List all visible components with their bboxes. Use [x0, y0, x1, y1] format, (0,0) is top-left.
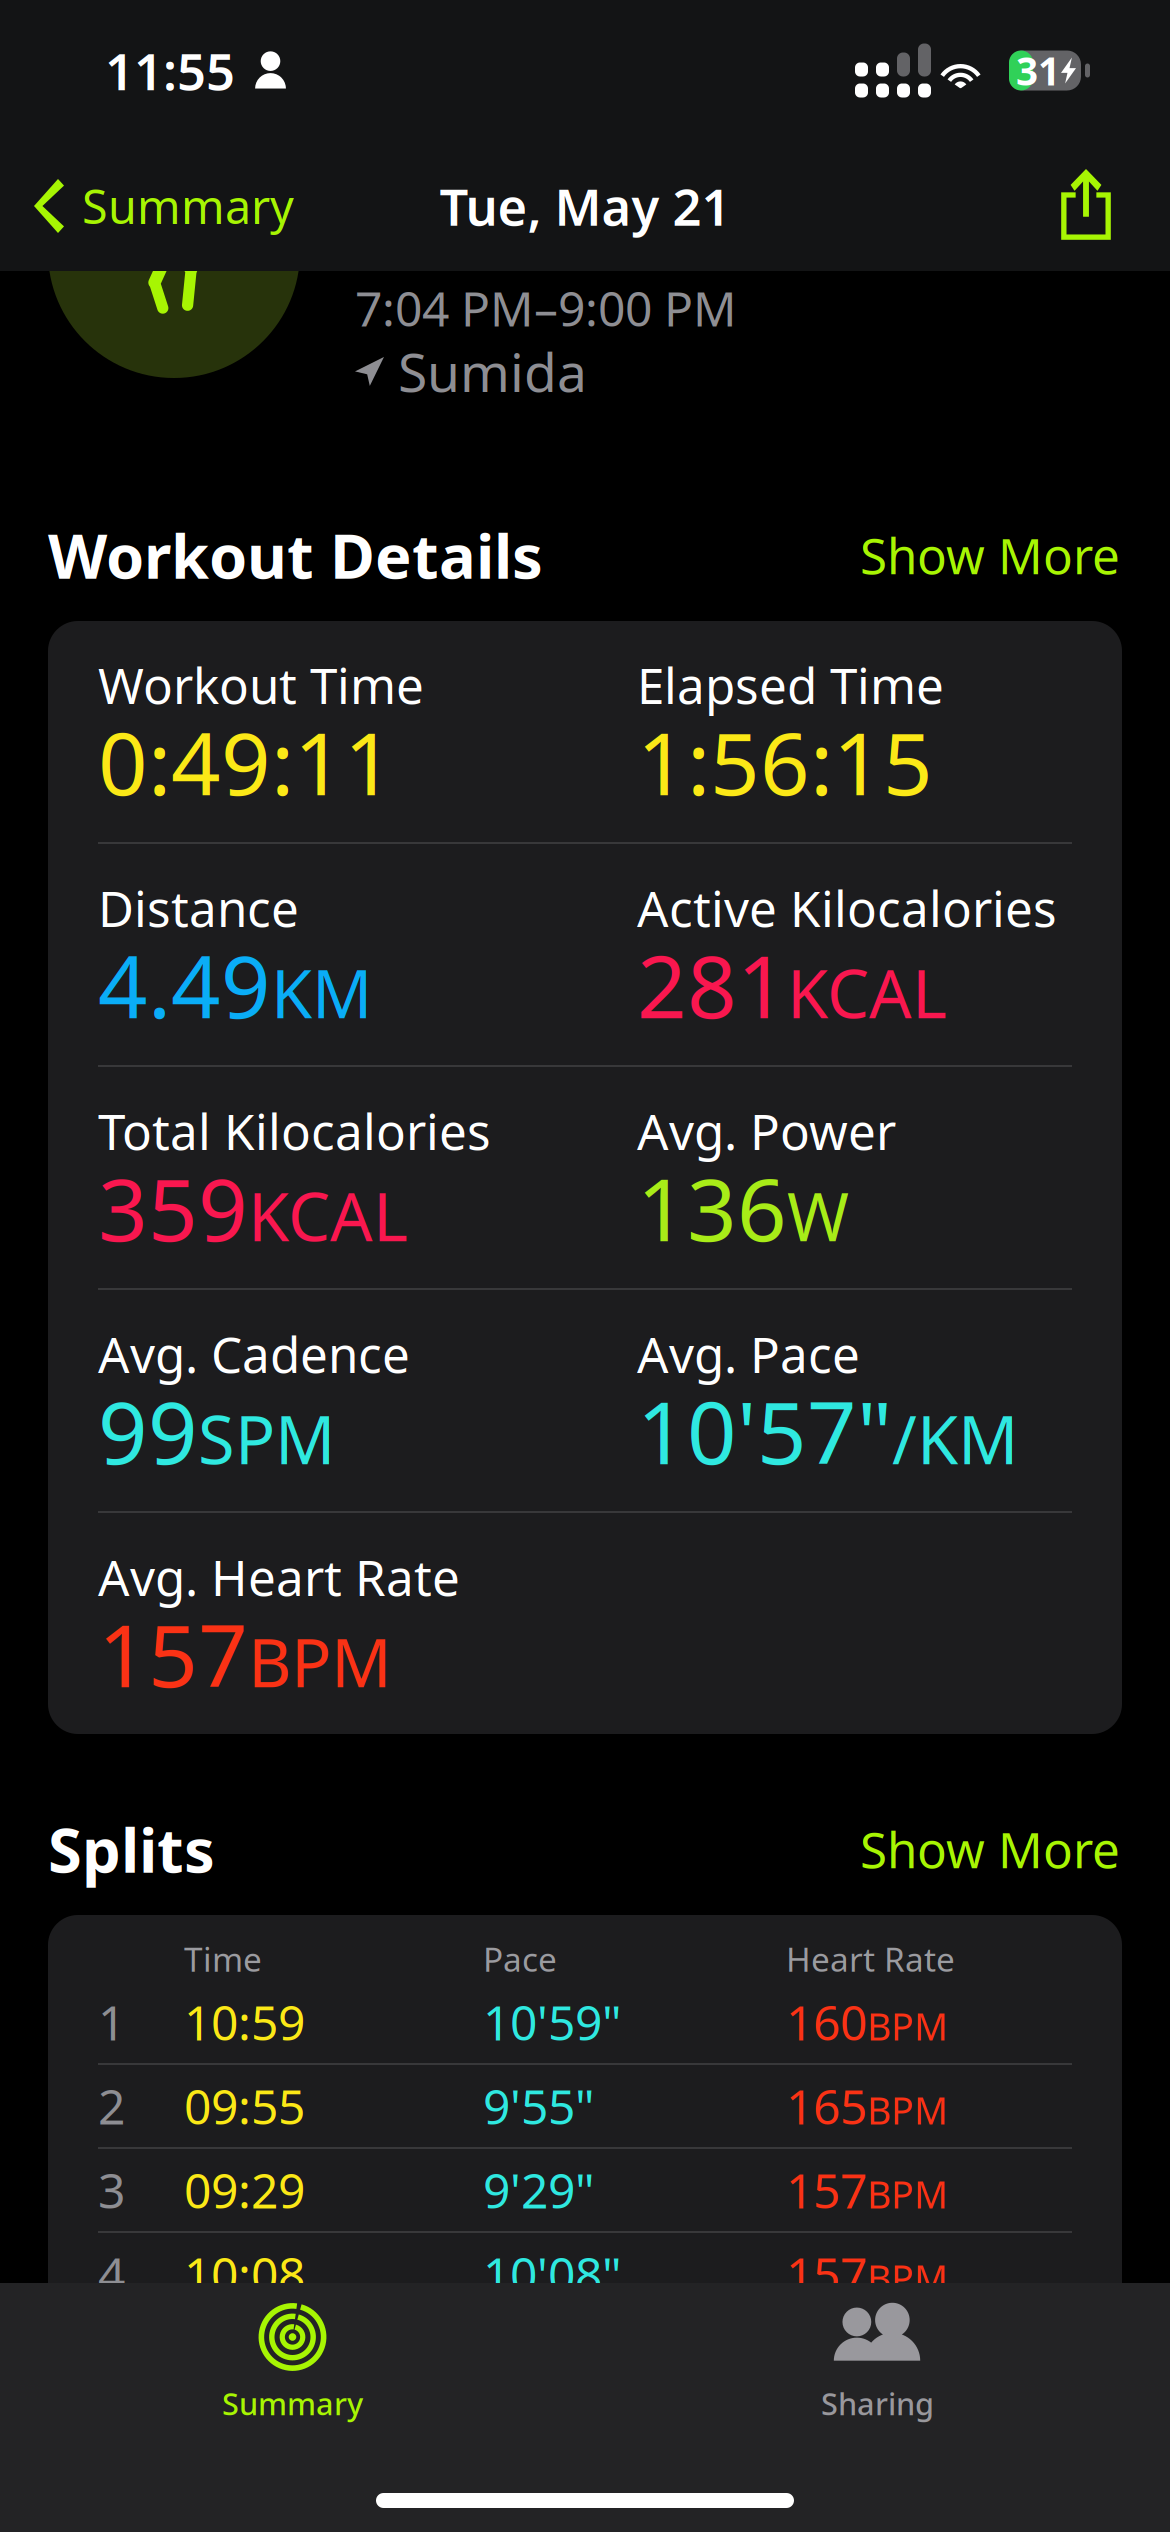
staticText: Show More [860, 1816, 1120, 1882]
staticText: Summary [222, 2383, 363, 2424]
staticText: 9'55" [483, 2074, 595, 2138]
staticText: 359 [98, 1150, 248, 1265]
staticText: 281 [637, 927, 787, 1042]
staticText: KM [271, 948, 372, 1036]
staticText: 136 [637, 1150, 787, 1265]
staticText: 160 [786, 1990, 867, 2054]
staticText: BPM [867, 2085, 948, 2135]
staticText: BPM [867, 2337, 948, 2387]
staticText: Sumida [398, 336, 587, 407]
staticText: BPM [248, 1617, 391, 1705]
staticText: 99 [98, 1373, 198, 1488]
staticText: Pace [483, 1937, 557, 1981]
staticText: Avg. Heart Rate [98, 1544, 460, 1609]
button[interactable]: Summary [0, 2283, 585, 2442]
staticText: 09:55 [184, 2074, 305, 2138]
staticText: 1:56:15 [637, 704, 933, 819]
staticText: KCAL [787, 948, 947, 1036]
staticText: KCAL [248, 1171, 408, 1259]
staticText: 9'29" [483, 2158, 595, 2222]
staticText: Tue, May 21 [439, 172, 730, 240]
staticText: 09:29 [184, 2158, 305, 2222]
staticText: 11:55 [105, 37, 235, 104]
staticText: 160 [786, 2410, 867, 2474]
staticText: BPM [867, 2169, 948, 2219]
staticText: 31 [1016, 45, 1060, 96]
staticText: 165 [786, 2074, 867, 2138]
staticText: Elapsed Time [637, 652, 944, 717]
staticText: 10:59 [184, 1990, 305, 2054]
staticText: Avg. Cadence [98, 1321, 410, 1386]
staticText: 10:22 [184, 2326, 305, 2390]
staticText: Summary [82, 175, 294, 237]
staticText: 154 [786, 2326, 867, 2390]
staticText: 10'08" [483, 2242, 622, 2306]
staticText: BPM [867, 2421, 948, 2471]
staticText: 4 [98, 2242, 125, 2306]
staticText: 1 [98, 1990, 125, 2054]
button[interactable]: Sharing [585, 2283, 1170, 2442]
staticText: 09:47 [184, 2410, 305, 2474]
staticText: 3 [98, 2158, 125, 2222]
staticText: 2 [98, 2074, 125, 2138]
staticText: Workout Time [98, 652, 424, 717]
staticText: Time [184, 1937, 262, 1981]
staticText: 10:08 [184, 2242, 305, 2306]
staticText: 157 [786, 2242, 867, 2306]
button[interactable]: Show More [860, 522, 1120, 588]
staticText: Sharing [821, 2383, 934, 2424]
staticText: BPM [867, 2253, 948, 2303]
staticText: Distance [98, 875, 299, 940]
staticText: Avg. Power [637, 1098, 896, 1163]
staticText: Avg. Pace [637, 1321, 860, 1386]
staticText: Total Kilocalories [98, 1098, 491, 1163]
staticText: Show More [860, 522, 1120, 588]
button[interactable]: Summary [34, 159, 294, 253]
staticText: Active Kilocalories [637, 875, 1057, 940]
staticText: /KM [892, 1394, 1018, 1482]
staticText: Workout Details [48, 514, 543, 596]
button[interactable]: Show More [860, 1816, 1120, 1882]
staticText: 10'57" [637, 1373, 892, 1488]
staticText: 0:49:11 [98, 704, 394, 819]
staticText: 157 [98, 1596, 248, 1711]
staticText: BPM [867, 2001, 948, 2051]
button[interactable]: Share [1042, 157, 1130, 255]
staticText: W [787, 1171, 849, 1259]
staticText: 10'59" [483, 1990, 622, 2054]
staticText: 4.49 [98, 927, 271, 1042]
staticText: 157 [786, 2158, 867, 2222]
staticText: Heart Rate [786, 1937, 955, 1981]
staticText: 7:04 PM–9:00 PM [355, 276, 737, 340]
staticText: SPM [198, 1394, 335, 1482]
staticText: Splits [48, 1808, 215, 1890]
